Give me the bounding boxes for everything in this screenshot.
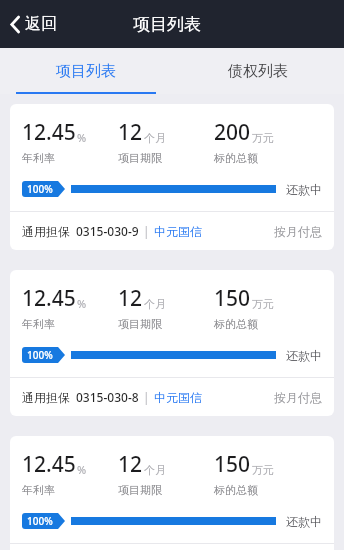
staticText: 按月付息 [274, 390, 322, 405]
button[interactable]: 返回 [0, 0, 67, 48]
staticText: % [77, 130, 87, 145]
staticText: 200 [214, 118, 251, 147]
staticText: 返回 [25, 14, 57, 34]
staticText: 还款中 [286, 348, 322, 363]
staticText: 年利率 [22, 317, 55, 331]
staticText: 年利率 [22, 483, 55, 497]
staticText: 个月 [144, 463, 166, 477]
staticText: 0315-030-8 [76, 389, 139, 405]
staticText: 万元 [252, 131, 274, 145]
button[interactable]: 中元国信 [154, 390, 202, 405]
staticText: | [143, 223, 150, 239]
staticText: 项目期限 [118, 483, 162, 497]
staticText: 通用担保 [22, 390, 70, 405]
staticText: 标的总额 [214, 317, 258, 331]
button[interactable]: 中元国信 [154, 224, 202, 239]
staticText: % [77, 462, 87, 477]
staticText: 标的总额 [214, 151, 258, 165]
staticText: 150 [214, 284, 251, 313]
staticText: 150 [214, 450, 251, 479]
staticText: 万元 [252, 297, 274, 311]
button[interactable]: 12.45 [10, 104, 334, 250]
staticText: 债权列表 [228, 62, 288, 81]
staticText: % [77, 296, 87, 311]
staticText: 标的总额 [214, 483, 258, 497]
button[interactable]: 12.45 [10, 436, 334, 550]
button[interactable]: 项目列表 [0, 48, 172, 94]
staticText: 12.45 [22, 118, 76, 147]
staticText: 个月 [144, 131, 166, 145]
staticText: 项目列表 [133, 14, 201, 35]
staticText: 12.45 [22, 284, 76, 313]
staticText: 12 [118, 118, 143, 147]
staticText: 100% [27, 182, 53, 196]
staticText: 12 [118, 450, 143, 479]
staticText: 通用担保 [22, 224, 70, 239]
staticText: 项目期限 [118, 317, 162, 331]
staticText: 12.45 [22, 450, 76, 479]
staticText: 12 [118, 284, 143, 313]
button[interactable]: 12.45 [10, 270, 334, 416]
staticText: 年利率 [22, 151, 55, 165]
staticText: 按月付息 [274, 224, 322, 239]
staticText: 项目列表 [56, 62, 116, 81]
staticText: 100% [27, 514, 53, 528]
staticText: 0315-030-9 [76, 223, 139, 239]
staticText: | [143, 389, 150, 405]
staticText: 还款中 [286, 182, 322, 197]
staticText: 100% [27, 348, 53, 362]
staticText: 项目期限 [118, 151, 162, 165]
staticText: 万元 [252, 463, 274, 477]
staticText: 还款中 [286, 514, 322, 529]
button[interactable]: 债权列表 [172, 48, 344, 94]
staticText: 个月 [144, 297, 166, 311]
